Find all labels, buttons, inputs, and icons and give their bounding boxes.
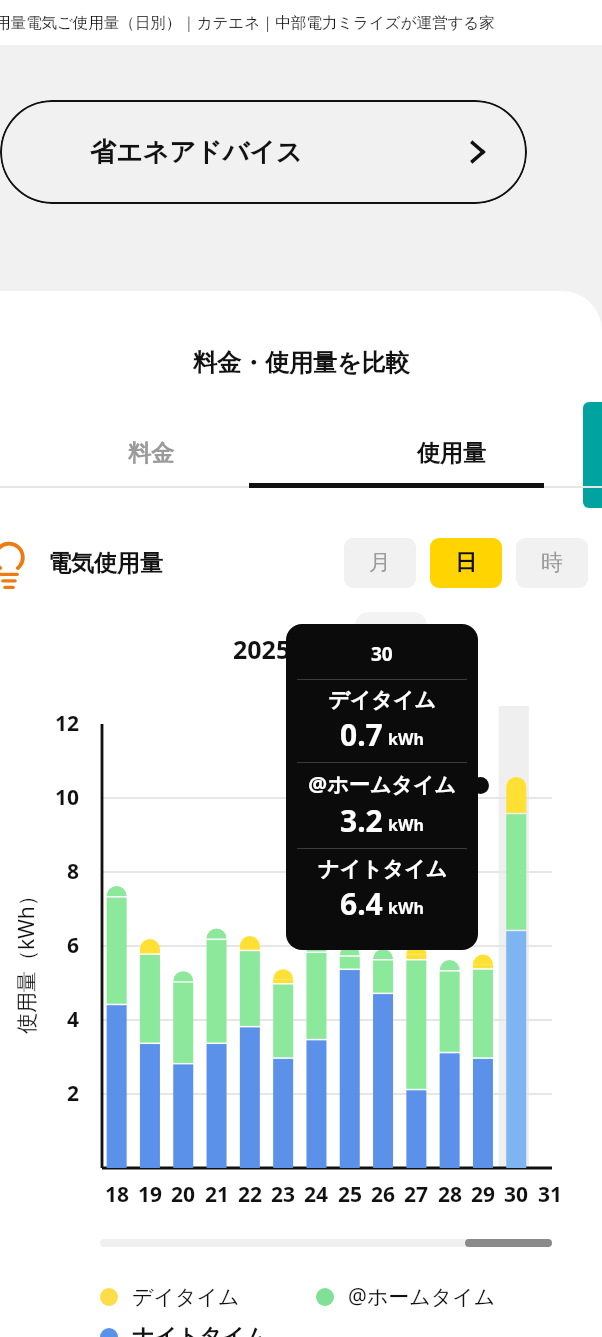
- staticText: デイタイム: [132, 1284, 240, 1310]
- staticText: 2025年05月: [233, 632, 369, 666]
- staticText: 料金: [128, 439, 174, 468]
- button[interactable]: サイドメニュー: [583, 402, 602, 508]
- staticText: 31: [538, 1180, 563, 1209]
- button[interactable]: 月: [344, 538, 416, 588]
- staticText: 時: [541, 549, 563, 577]
- staticText: 省エネアドバイス: [90, 136, 303, 169]
- staticText: kWh: [388, 728, 424, 750]
- staticText: 27: [404, 1180, 429, 1209]
- staticText: kWh: [388, 814, 424, 836]
- button[interactable]: 次の期間: [355, 612, 427, 660]
- staticText: 0.7: [340, 714, 383, 755]
- staticText: 23: [271, 1180, 296, 1209]
- staticText: 30: [371, 641, 393, 667]
- button[interactable]: 日: [430, 538, 502, 588]
- staticText: 2: [67, 1079, 80, 1108]
- staticText: @ホームタイム: [308, 770, 456, 799]
- staticText: 4: [67, 1005, 80, 1034]
- staticText: @ホームタイム: [348, 1282, 496, 1311]
- staticText: 28: [438, 1180, 463, 1209]
- staticText: ナイトタイム: [318, 856, 447, 882]
- staticText: 使用量（kWh）: [12, 885, 41, 1034]
- staticText: 25: [338, 1180, 363, 1209]
- staticText: 6: [67, 931, 80, 960]
- staticText: kWh: [388, 897, 424, 919]
- staticText: 6.4: [340, 883, 383, 924]
- staticText: ナイトタイム: [132, 1323, 268, 1337]
- staticText: デイタイム: [328, 687, 436, 713]
- staticText: 用量電気ご使用量（日別）｜カテエネ｜中部電力ミライズが運営する家: [0, 13, 495, 33]
- staticText: 29: [471, 1180, 496, 1209]
- staticText: 8: [67, 857, 80, 886]
- staticText: 12: [55, 709, 80, 738]
- button[interactable]: 時: [516, 538, 588, 588]
- staticText: 20: [171, 1180, 196, 1209]
- staticText: 26: [371, 1180, 396, 1209]
- staticText: 21: [205, 1180, 230, 1209]
- staticText: 料金・使用量を比較: [193, 348, 410, 378]
- button[interactable]: 省エネアドバイス: [0, 100, 527, 204]
- staticText: 10: [55, 783, 80, 812]
- staticText: 電気使用量: [48, 549, 163, 578]
- button[interactable]: 料金: [0, 420, 301, 486]
- staticText: 月: [369, 549, 391, 577]
- staticText: 22: [238, 1180, 263, 1209]
- staticText: 18: [105, 1180, 130, 1209]
- staticText: 24: [304, 1180, 329, 1209]
- staticText: 19: [138, 1180, 163, 1209]
- staticText: 30: [504, 1180, 529, 1209]
- staticText: 使用量: [417, 439, 486, 468]
- button[interactable]: 使用量: [301, 420, 602, 486]
- staticText: 3.2: [340, 800, 383, 841]
- staticText: 日: [455, 549, 477, 577]
